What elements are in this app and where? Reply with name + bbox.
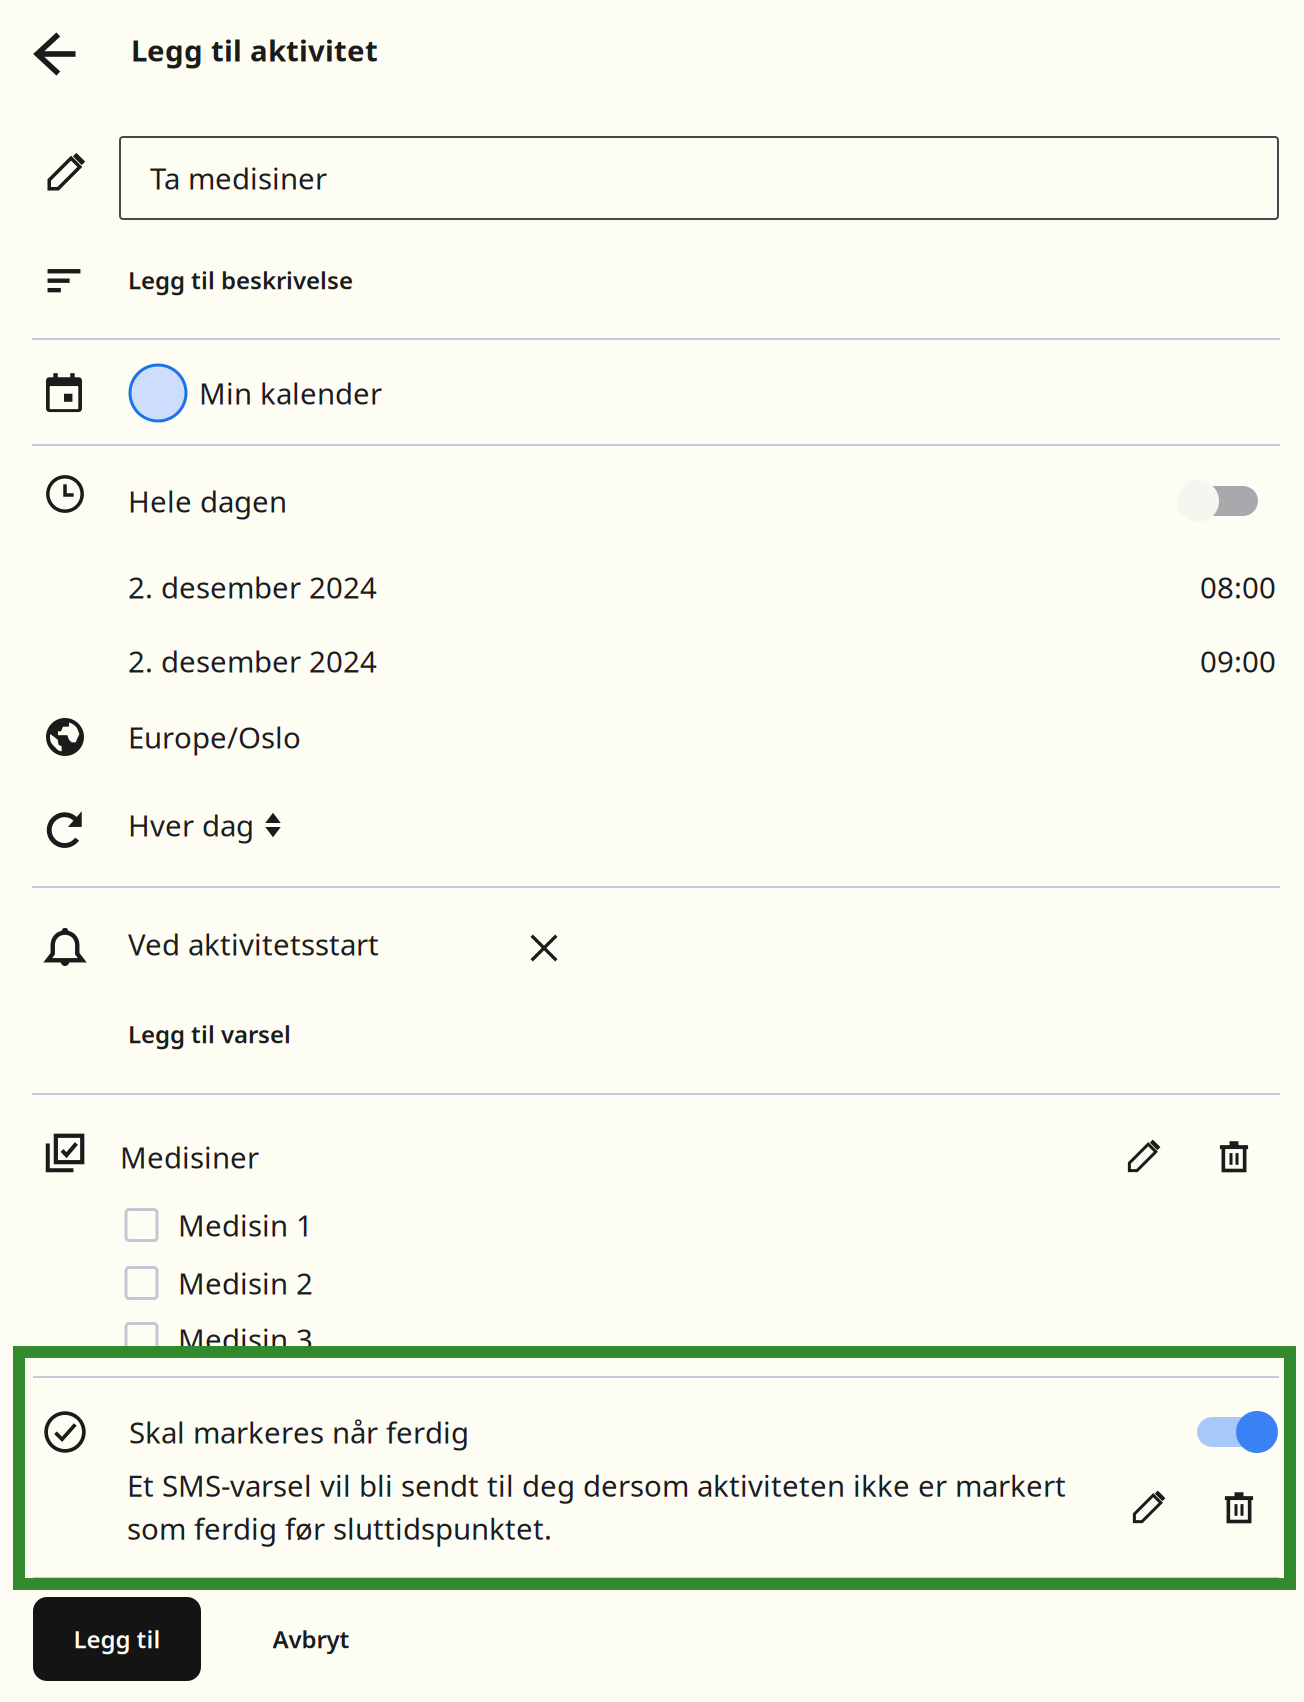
staticText: 08:00 [1200,567,1276,606]
button[interactable]: Hele dagen [1176,479,1260,523]
staticText: Europe/Oslo [128,717,301,756]
staticText: Medisin 1 [178,1205,313,1244]
staticText: Medisiner [120,1137,259,1176]
button[interactable]: Legg til varsel [0,1004,480,1064]
button[interactable]: Skal markeres når ferdig [1195,1410,1279,1454]
staticText: Medisin 3 [178,1319,313,1358]
button[interactable]: 2. desember 2024 [128,639,448,683]
button[interactable]: Fjern varsel [516,920,572,976]
button[interactable]: Avbryt [201,1597,421,1681]
button[interactable]: Rediger [1120,1480,1176,1536]
staticText: Hver dag [128,805,254,844]
button[interactable]: Tilbake [23,21,89,87]
staticText: Min kalender [199,373,382,412]
button[interactable]: Legg til beskrivelse [0,249,560,311]
staticText: Hele dagen [128,481,287,520]
button[interactable]: Slett [1211,1480,1267,1536]
staticText: Legg til beskrivelse [128,264,353,296]
staticText: Skal markeres når ferdig [129,1412,469,1451]
staticText: Medisin 2 [178,1263,313,1302]
staticText: som ferdig før sluttidspunktet. [127,1509,552,1548]
staticText: Et SMS-varsel vil bli sendt til deg ders… [127,1466,1066,1505]
staticText: Legg til aktivitet [131,30,378,69]
button[interactable]: Medisin 1 [0,1203,560,1247]
button[interactable]: Europe/Oslo [128,714,448,760]
button[interactable]: Ta medisiner [120,137,1278,219]
staticText: Legg til varsel [128,1018,291,1050]
button[interactable]: Hver dag [128,802,428,848]
button[interactable]: 09:00 [1176,639,1276,683]
staticText: Avbryt [272,1623,349,1655]
staticText: 2. desember 2024 [128,641,377,680]
button[interactable]: Rediger medisiner [1115,1129,1171,1185]
button[interactable]: Legg til [33,1597,201,1681]
staticText: 09:00 [1200,641,1276,680]
staticText: Ved aktivitetsstart [128,924,379,963]
button[interactable]: 2. desember 2024 [128,565,448,609]
staticText: 2. desember 2024 [128,567,377,606]
staticText: Legg til [73,1623,160,1655]
button[interactable]: Medisin 3 [0,1317,560,1361]
button[interactable]: 08:00 [1176,565,1276,609]
button[interactable]: Medisin 2 [0,1261,560,1305]
button[interactable]: Slett medisiner [1206,1129,1262,1185]
staticText: Ta medisiner [150,158,327,197]
